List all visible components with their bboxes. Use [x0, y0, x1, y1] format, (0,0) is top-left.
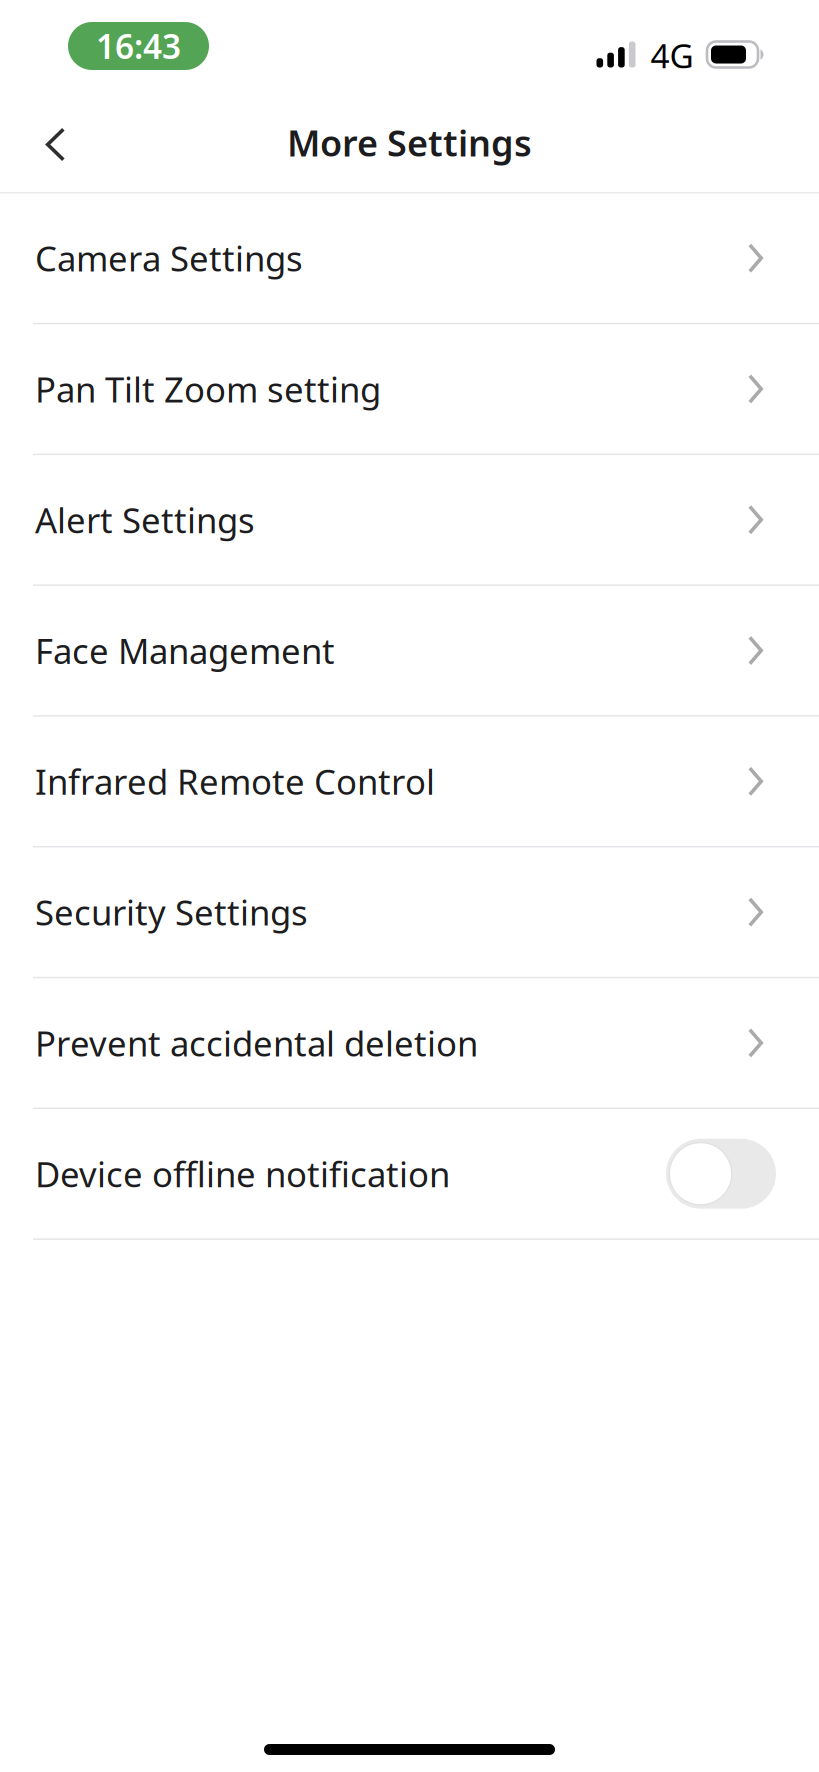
button[interactable]: Prevent accidental deletion [0, 978, 819, 1107]
button[interactable]: Face Management [0, 586, 819, 715]
staticText: Alert Settings [35, 497, 255, 543]
button[interactable]: Infrared Remote Control [0, 717, 819, 846]
button[interactable]: Device offline notification [0, 1109, 819, 1238]
staticText: More Settings [287, 119, 532, 166]
staticText: Camera Settings [35, 235, 303, 281]
button[interactable]: Security Settings [0, 847, 819, 977]
staticText: Prevent accidental deletion [35, 1020, 478, 1066]
staticText: Device offline notification [35, 1151, 450, 1197]
button[interactable]: Back [0, 93, 109, 192]
staticText: Security Settings [35, 889, 308, 935]
button[interactable]: Alert Settings [0, 455, 819, 584]
staticText: 16:43 [96, 24, 181, 68]
button[interactable]: Camera Settings [0, 193, 819, 323]
staticText: Infrared Remote Control [35, 758, 435, 804]
staticText: Face Management [35, 627, 335, 673]
staticText: Pan Tilt Zoom setting [35, 366, 381, 412]
staticText: 4G [650, 33, 693, 77]
button[interactable]: Pan Tilt Zoom setting [0, 324, 819, 453]
